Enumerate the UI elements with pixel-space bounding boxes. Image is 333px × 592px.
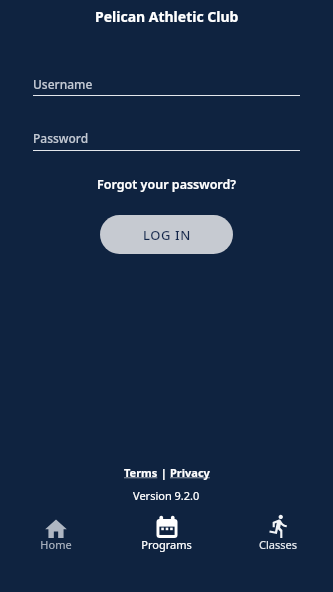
staticText: Home xyxy=(40,537,72,552)
button[interactable]: Username xyxy=(33,76,300,96)
staticText: Version 9.2.0 xyxy=(133,488,200,503)
staticText: Programs xyxy=(141,537,192,552)
button[interactable]: Programs xyxy=(111,510,222,552)
staticText: Username xyxy=(33,76,93,92)
staticText: Pelican Athletic Club xyxy=(95,7,239,26)
staticText: | xyxy=(158,465,170,480)
button[interactable]: Classes xyxy=(222,510,333,552)
button[interactable]: Forgot your password? xyxy=(97,176,237,193)
staticText: Password xyxy=(33,130,89,146)
staticText: LOG IN xyxy=(143,226,191,244)
staticText: Classes xyxy=(259,537,297,552)
button[interactable]: Terms xyxy=(124,465,158,480)
button[interactable]: Home xyxy=(0,510,111,552)
button[interactable]: Privacy xyxy=(170,465,210,480)
button[interactable]: LOG IN xyxy=(100,215,233,254)
button[interactable]: Password xyxy=(33,130,300,151)
